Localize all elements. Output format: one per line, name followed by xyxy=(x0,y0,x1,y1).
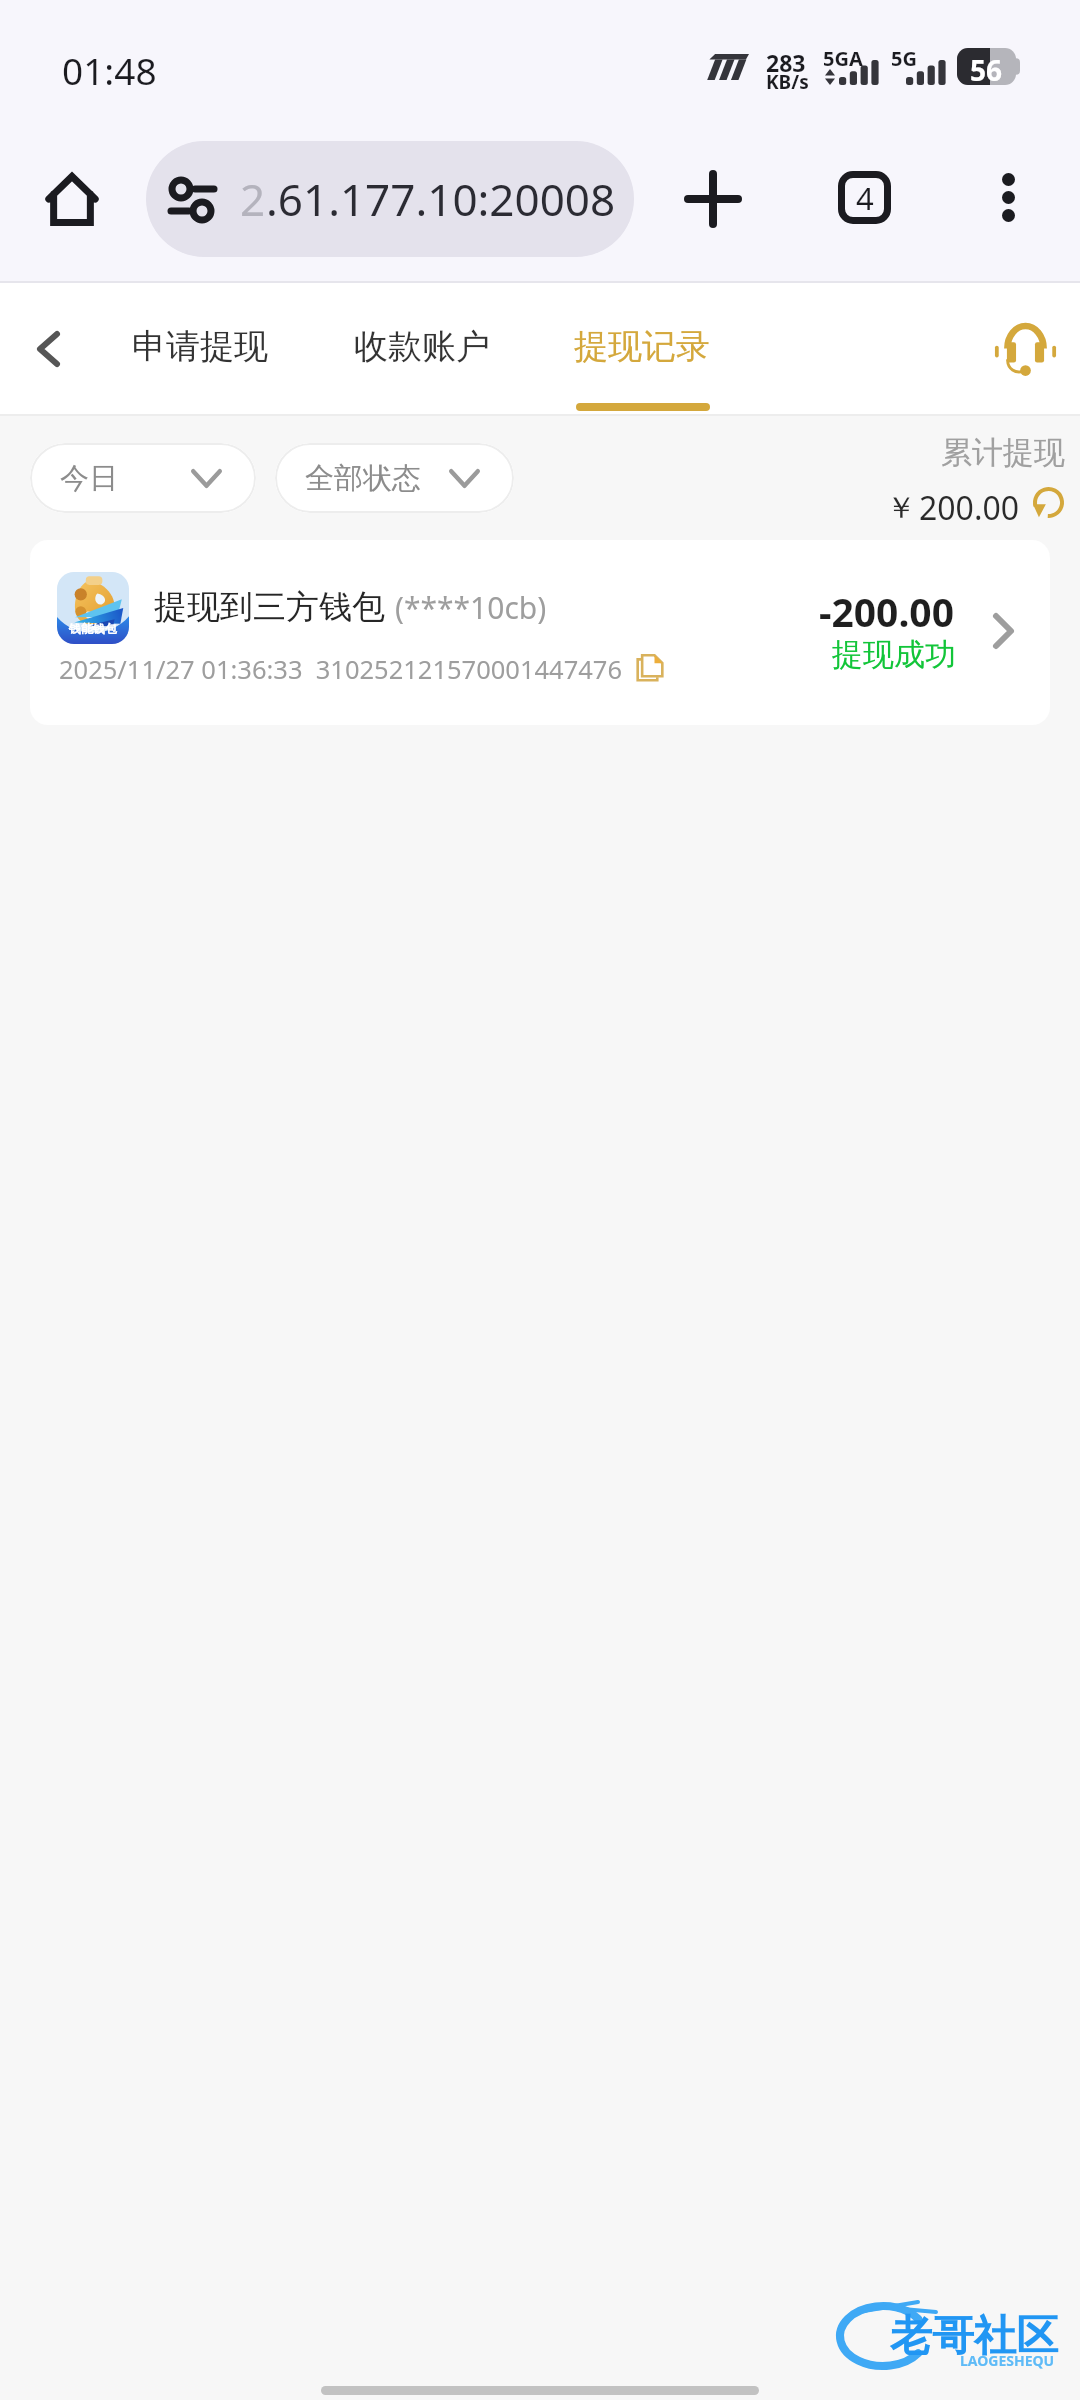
staticText: 收款账户 xyxy=(354,325,490,368)
button[interactable]: More options xyxy=(964,153,1052,241)
button[interactable]: Copy xyxy=(636,653,664,682)
staticText: LAOGESHEQU xyxy=(960,2351,1055,2370)
button[interactable]: 今日 xyxy=(30,443,256,513)
staticText: 5GA xyxy=(823,45,863,72)
staticText: 今日 xyxy=(60,460,118,497)
staticText: 5G xyxy=(891,45,917,72)
staticText: ￥ xyxy=(886,489,916,527)
staticText: (****10cb) xyxy=(395,587,547,628)
button[interactable]: Refresh xyxy=(1032,486,1065,519)
staticText: .61.177.10:20008 xyxy=(266,169,616,229)
staticText: 2 xyxy=(240,169,266,229)
button[interactable]: 钱能钱包 xyxy=(30,540,1050,725)
button[interactable]: 2 xyxy=(146,141,634,257)
staticText: 01:48 xyxy=(62,45,157,95)
button[interactable]: Tabs xyxy=(820,153,908,241)
button[interactable]: 提现记录 xyxy=(559,283,725,414)
staticText: -200.00 xyxy=(819,585,954,638)
staticText: 全部状态 xyxy=(305,460,421,497)
staticText: KB/s xyxy=(766,69,809,95)
staticText: 申请提现 xyxy=(132,325,268,368)
button[interactable]: 申请提现 xyxy=(117,283,283,414)
button[interactable]: 全部状态 xyxy=(275,443,514,513)
staticText: 2025/11/27 01:36:33 31025212157000144747… xyxy=(59,652,623,687)
button[interactable]: Home xyxy=(28,155,116,243)
staticText: 老哥社区 xyxy=(890,2310,1058,2363)
staticText: 累计提现 xyxy=(941,433,1065,472)
staticText: 283 xyxy=(766,47,806,78)
staticText: 钱能钱包 xyxy=(69,621,117,636)
staticText: 56 xyxy=(970,51,1003,88)
staticText: 4 xyxy=(856,177,874,219)
staticText: 提现记录 xyxy=(574,325,710,368)
button[interactable]: 收款账户 xyxy=(339,283,505,414)
button[interactable]: Customer service xyxy=(977,283,1073,414)
staticText: 提现成功 xyxy=(832,635,956,674)
staticText: 提现到三方钱包 xyxy=(154,586,385,628)
button[interactable]: New tab xyxy=(669,155,757,243)
button[interactable]: Back xyxy=(2,283,94,414)
staticText: 200.00 xyxy=(919,486,1020,530)
